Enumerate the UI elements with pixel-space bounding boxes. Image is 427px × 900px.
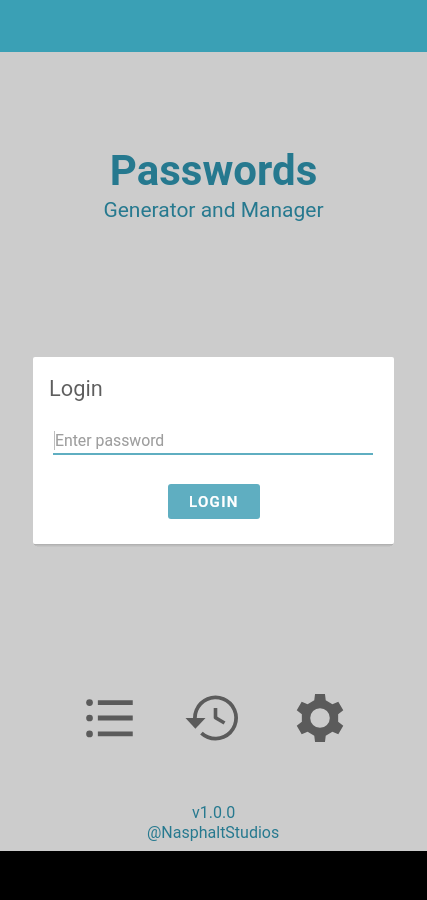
staticText: Generator and Manager	[0, 198, 427, 223]
staticText: Login	[49, 376, 103, 402]
button[interactable]: Password list	[78, 688, 138, 748]
staticText: @NasphaltStudios	[147, 823, 280, 842]
button[interactable]: LOGIN	[168, 484, 260, 519]
button[interactable]: History	[184, 688, 244, 748]
staticText: v1.0.0	[192, 803, 236, 822]
staticText: Passwords	[0, 146, 427, 195]
button[interactable]: Enter password	[53, 427, 373, 455]
staticText: LOGIN	[189, 493, 239, 511]
staticText: Enter password	[55, 431, 165, 450]
button[interactable]: Settings	[290, 688, 350, 748]
